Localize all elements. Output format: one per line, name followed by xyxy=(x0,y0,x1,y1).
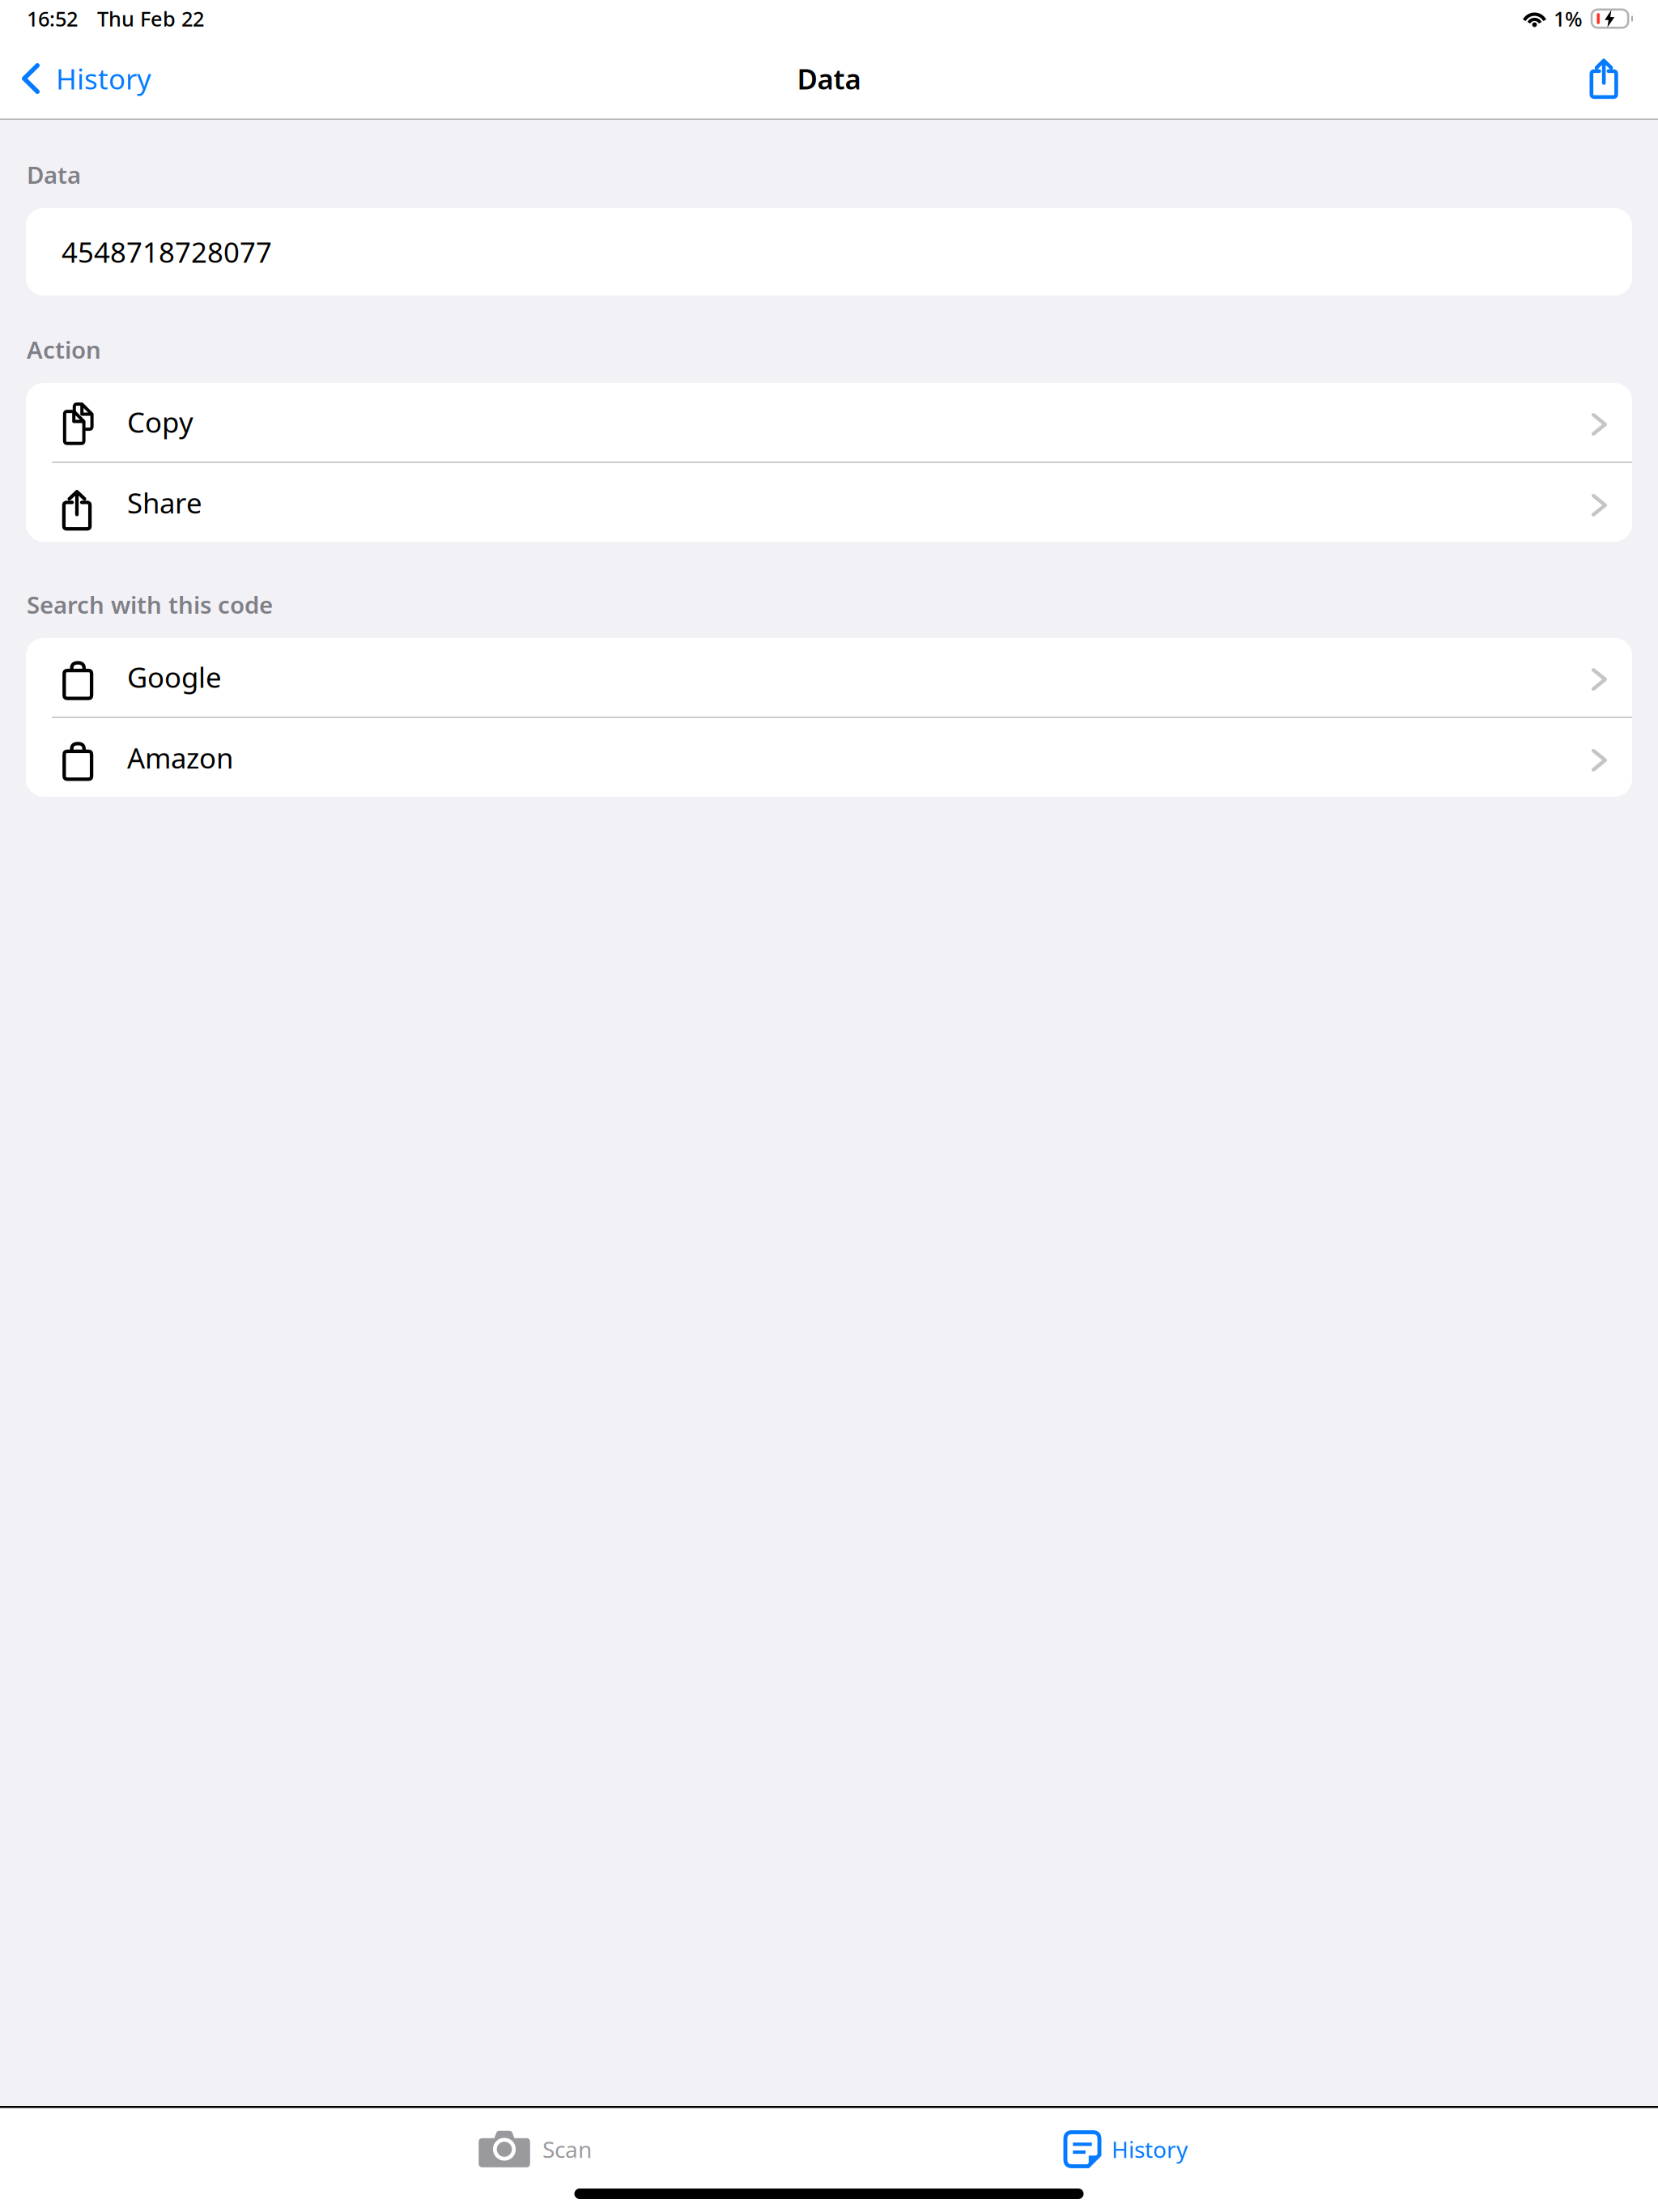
button[interactable]: Google xyxy=(26,637,1632,717)
staticText: 1% xyxy=(1554,5,1583,32)
staticText: Thu Feb 22 xyxy=(97,5,204,32)
staticText: 4548718728077 xyxy=(62,233,272,270)
staticText: Copy xyxy=(127,403,193,441)
button[interactable]: Copy xyxy=(26,382,1632,462)
button[interactable]: Amazon xyxy=(26,718,1632,797)
staticText: Scan xyxy=(542,2134,592,2164)
staticText: 16:52 xyxy=(27,5,78,32)
staticText: Amazon xyxy=(127,739,233,776)
staticText: Data xyxy=(27,159,81,190)
button[interactable]: Scan xyxy=(457,2129,611,2169)
staticText: Action xyxy=(27,334,101,365)
staticText: History xyxy=(56,60,151,97)
button[interactable]: History xyxy=(0,42,169,115)
button[interactable]: Share xyxy=(26,463,1632,542)
staticText: Share xyxy=(127,484,202,521)
button[interactable]: Share xyxy=(1571,42,1658,115)
staticText: History xyxy=(1112,2134,1188,2164)
staticText: Data xyxy=(797,60,861,97)
button[interactable]: History xyxy=(1041,2129,1207,2169)
staticText: Google xyxy=(127,658,222,696)
staticText: Search with this code xyxy=(27,589,273,620)
